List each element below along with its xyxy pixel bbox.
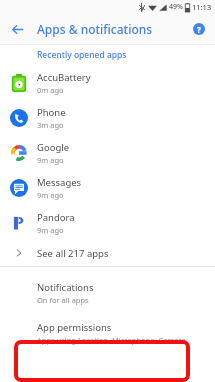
button[interactable]: Pandora	[0, 205, 215, 240]
staticText: Messages	[37, 176, 82, 189]
staticText: 49%	[169, 2, 183, 12]
button[interactable]: Phone	[0, 100, 215, 135]
button[interactable]: See all 217 apps	[0, 240, 215, 266]
staticText: Notifications	[37, 281, 94, 294]
staticText: Pandora	[37, 211, 75, 224]
staticText: Phone	[37, 106, 66, 119]
button[interactable]: AccuBattery	[0, 65, 215, 100]
staticText: Recently opened apps	[37, 49, 127, 61]
staticText: Apps using Location, Microphone, Camera	[37, 335, 186, 345]
staticText: 9m ago	[37, 225, 64, 235]
button[interactable]: Google	[0, 135, 215, 170]
button[interactable]: Back	[6, 18, 28, 40]
staticText: 0m ago	[37, 85, 64, 95]
staticText: App permissions	[37, 321, 112, 334]
button[interactable]: App permissions	[0, 316, 215, 350]
button[interactable]: Notifications	[0, 276, 215, 310]
button[interactable]: Help	[188, 18, 210, 40]
button[interactable]: Messages	[0, 170, 215, 205]
staticText: 11:13	[192, 2, 212, 12]
staticText: AccuBattery	[37, 71, 91, 84]
staticText: 9m ago	[37, 190, 64, 200]
staticText: 3m ago	[37, 120, 64, 130]
staticText: 9m ago	[37, 155, 64, 165]
staticText: On for all apps	[37, 295, 89, 305]
staticText: ?	[197, 24, 201, 35]
staticText: See all 217 apps	[37, 247, 109, 260]
staticText: Google	[37, 141, 70, 154]
staticText: Apps & notifications	[37, 21, 153, 37]
